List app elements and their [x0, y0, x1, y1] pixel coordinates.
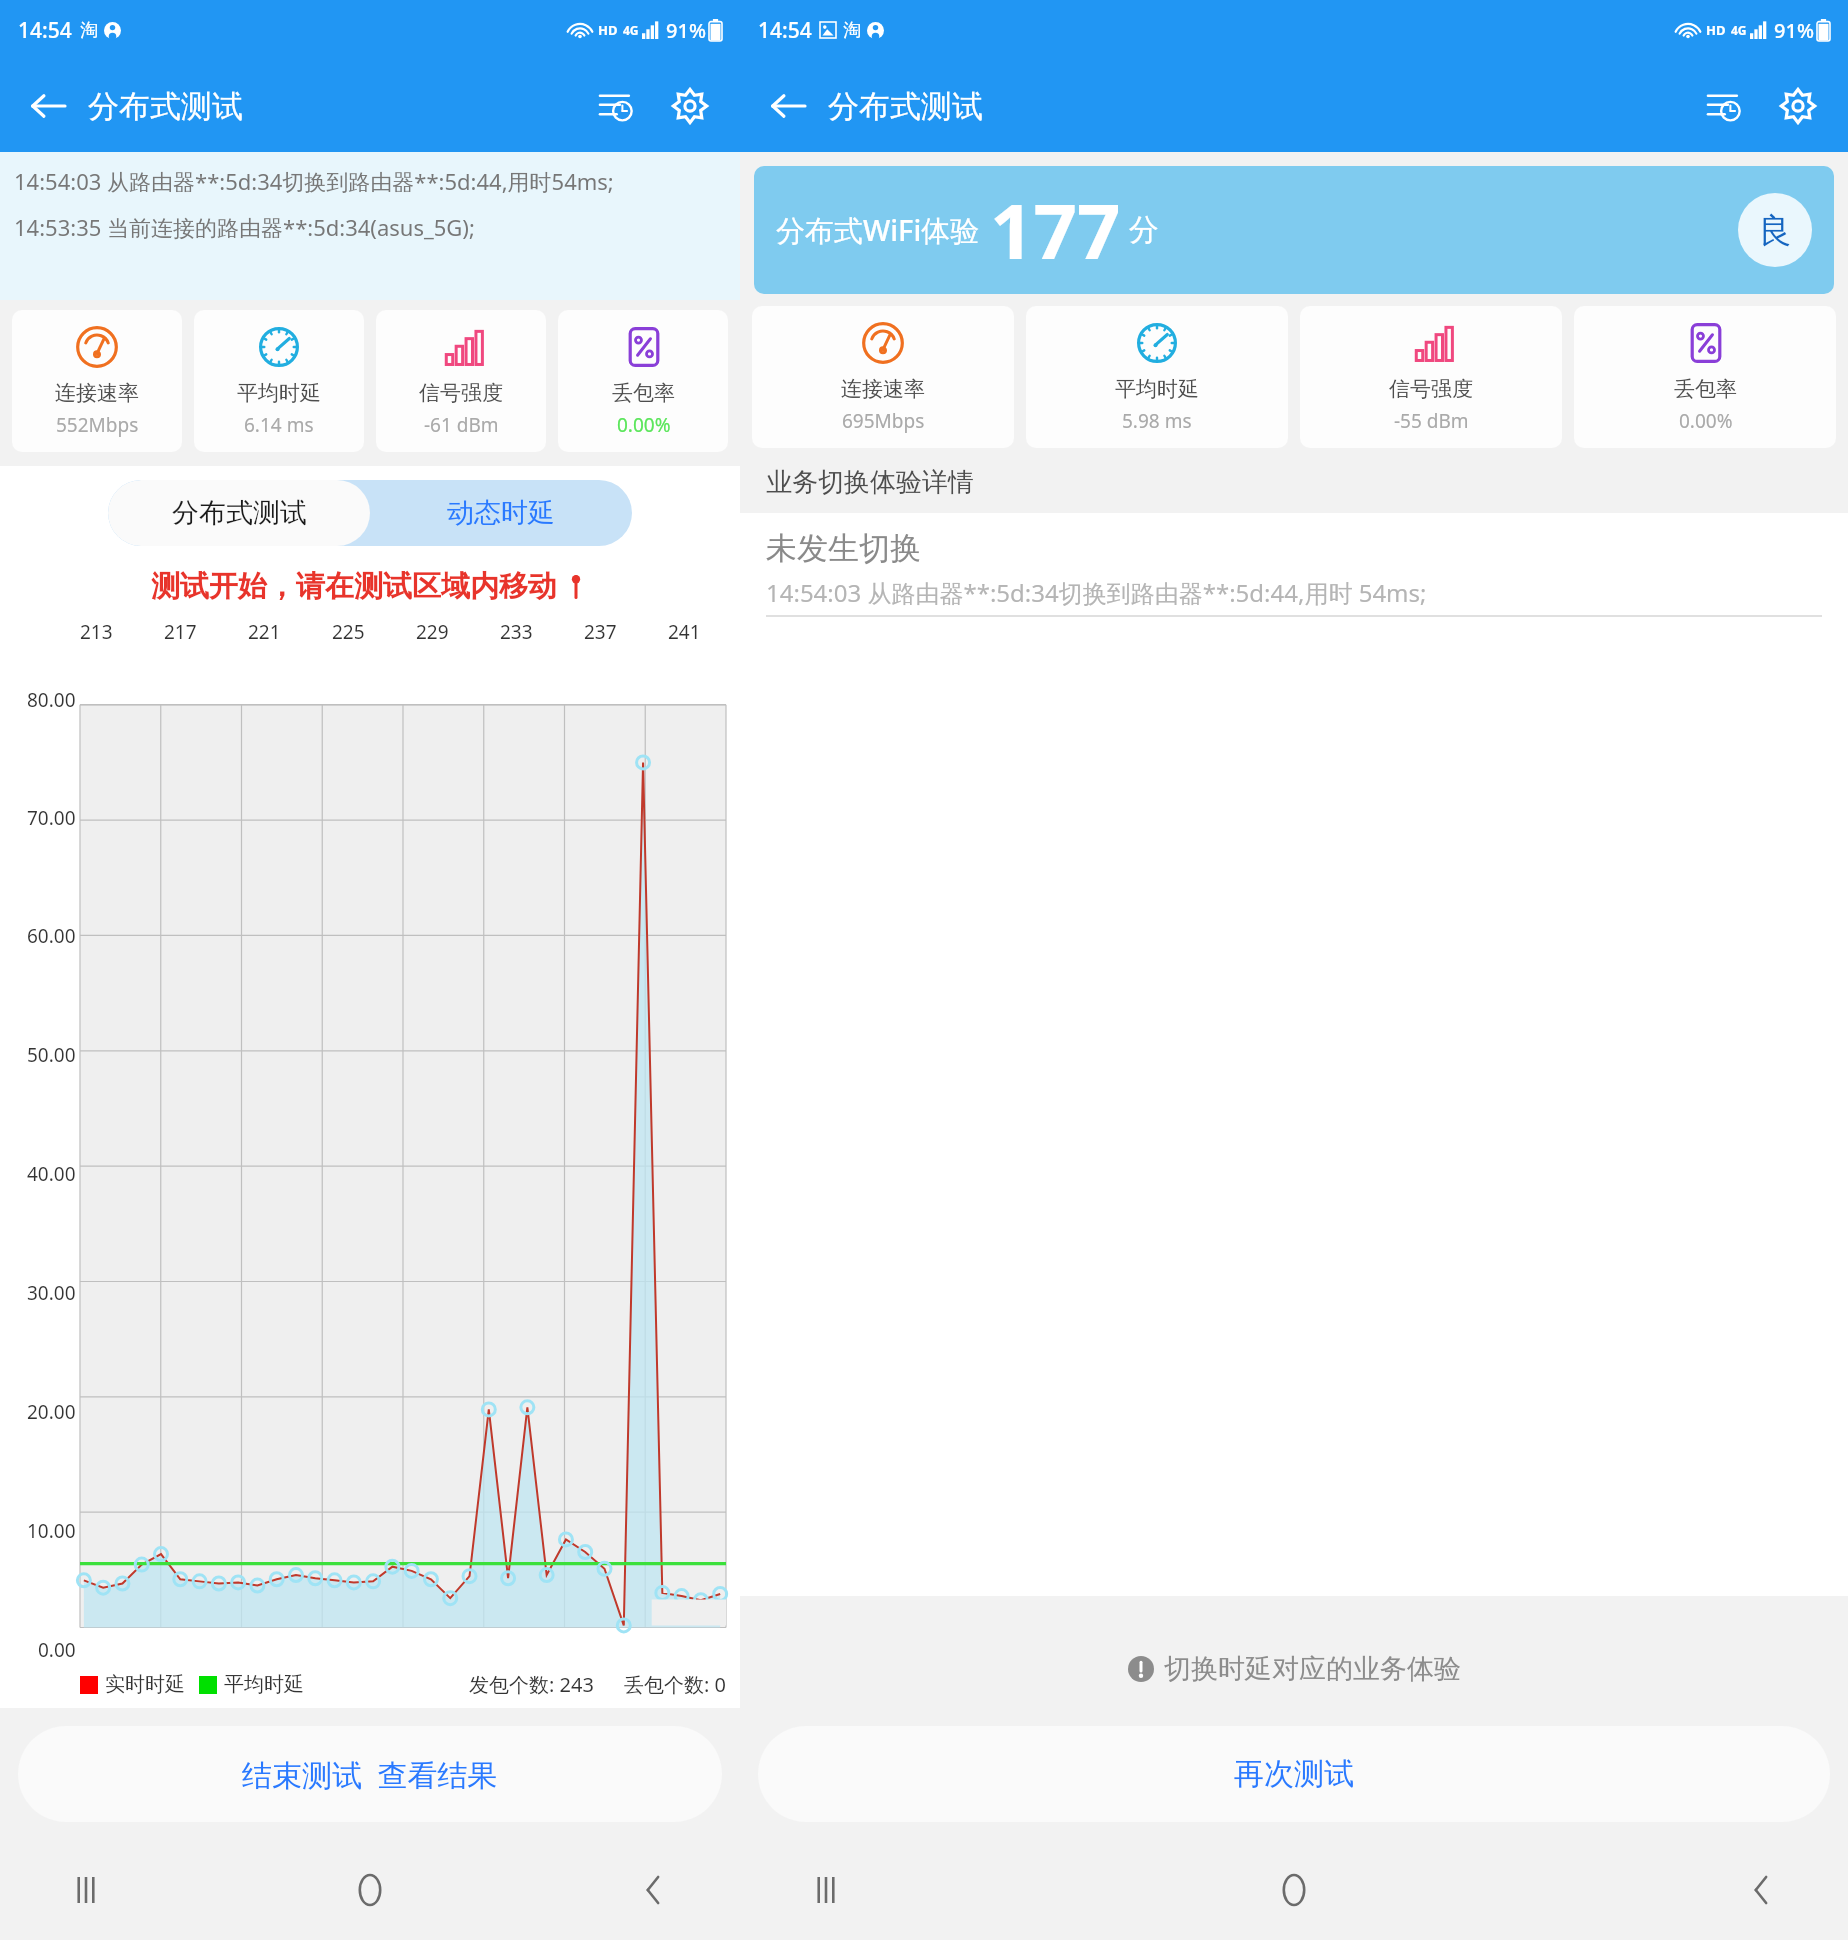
staticText: 动态时延	[447, 496, 555, 530]
staticText: 91%	[1774, 17, 1814, 44]
staticText: HD	[1706, 21, 1726, 39]
staticText: 业务切换体验详情	[766, 466, 974, 499]
staticText: 0.00%	[1679, 408, 1733, 434]
staticText: 发包个数: 243	[469, 1671, 594, 1698]
staticText: 233	[500, 619, 533, 645]
staticText: 0.00%	[617, 412, 671, 438]
button[interactable]: Back	[624, 1860, 684, 1920]
staticText: 连接速率	[841, 376, 925, 402]
button[interactable]: Recents	[56, 1860, 116, 1920]
staticText: 229	[416, 619, 449, 645]
button[interactable]: Home	[1264, 1860, 1324, 1920]
staticText: 6.14 ms	[244, 412, 314, 438]
staticText: 平均时延	[224, 1672, 304, 1697]
staticText: 14:54:03 从路由器**:5d:34切换到路由器**:5d:44,用时54…	[14, 166, 614, 196]
button[interactable]: 平均时延	[194, 310, 364, 452]
button[interactable]: Recents	[796, 1860, 856, 1920]
staticText: 平均时延	[1115, 376, 1199, 402]
staticText: 丢包率	[612, 380, 675, 406]
staticText: 213	[80, 619, 113, 645]
staticText: 14:54	[18, 16, 72, 45]
staticText: 60.00	[27, 923, 76, 949]
staticText: 30.00	[27, 1280, 76, 1306]
staticText: 分	[1129, 211, 1159, 249]
staticText: 分布式WiFi体验	[776, 210, 980, 250]
button[interactable]: 动态时延	[370, 480, 632, 546]
button[interactable]: Back	[1732, 1860, 1792, 1920]
staticText: 淘	[80, 19, 98, 42]
staticText: 225	[332, 619, 365, 645]
button[interactable]: 结束测试 查看结果	[18, 1726, 722, 1822]
staticText: -61 dBm	[424, 412, 499, 438]
staticText: 14:53:35 当前连接的路由器**:5d:34(asus_5G);	[14, 212, 475, 242]
button[interactable]: 信号强度	[1300, 306, 1562, 448]
staticText: 0.00	[38, 1637, 76, 1663]
staticText: 70.00	[27, 805, 76, 831]
staticText: 再次测试	[1234, 1755, 1354, 1793]
staticText: 信号强度	[1389, 376, 1473, 402]
button[interactable]: Settings	[1770, 78, 1826, 134]
staticText: 分布式测试	[828, 87, 983, 126]
staticText: 40.00	[27, 1161, 76, 1187]
staticText: 平均时延	[237, 380, 321, 406]
staticText: 14:54	[758, 16, 812, 45]
button[interactable]: Home	[340, 1860, 400, 1920]
button[interactable]: 连接速率	[12, 310, 182, 452]
staticText: 分布式测试	[172, 496, 307, 530]
button[interactable]: Settings	[662, 78, 718, 134]
staticText: 良	[1758, 209, 1792, 252]
staticText: 丢包率	[1674, 376, 1737, 402]
button[interactable]: 分布式测试	[108, 480, 370, 546]
staticText: 4G	[1731, 22, 1747, 38]
staticText: 测试开始，请在测试区域内移动	[151, 568, 557, 605]
button[interactable]: 信号强度	[376, 310, 546, 452]
staticText: 91%	[666, 17, 706, 44]
button[interactable]: 平均时延	[1026, 306, 1288, 448]
staticText: 221	[248, 619, 281, 645]
staticText: 14:54:03 从路由器**:5d:34切换到路由器**:5d:44,用时 5…	[766, 576, 1427, 609]
staticText: 80.00	[27, 687, 76, 713]
button[interactable]: 再次测试	[758, 1726, 1830, 1822]
staticText: 分布式测试	[88, 87, 243, 126]
button[interactable]: History	[588, 78, 644, 134]
staticText: 切换时延对应的业务体验	[1164, 1652, 1461, 1686]
staticText: 淘	[843, 19, 861, 42]
staticText: 20.00	[27, 1399, 76, 1425]
button[interactable]: 连接速率	[752, 306, 1014, 448]
button[interactable]: 丢包率	[1574, 306, 1836, 448]
staticText: 未发生切换	[766, 529, 921, 568]
staticText: 连接速率	[55, 380, 139, 406]
staticText: 实时时延	[105, 1672, 185, 1697]
staticText: HD	[598, 21, 618, 39]
staticText: -55 dBm	[1394, 408, 1469, 434]
staticText: 5.98 ms	[1122, 408, 1192, 434]
button[interactable]: History	[1696, 78, 1752, 134]
staticText: 241	[668, 619, 701, 645]
staticText: 50.00	[27, 1042, 76, 1068]
button[interactable]: Back	[22, 80, 74, 132]
staticText: 552Mbps	[56, 412, 139, 438]
staticText: 10.00	[27, 1518, 76, 1544]
staticText: 信号强度	[419, 380, 503, 406]
staticText: 217	[164, 619, 197, 645]
staticText: 丢包个数: 0	[624, 1671, 726, 1698]
button[interactable]: 丢包率	[558, 310, 728, 452]
staticText: 4G	[623, 22, 639, 38]
staticText: 177	[990, 178, 1121, 282]
staticText: 237	[584, 619, 617, 645]
staticText: 695Mbps	[842, 408, 925, 434]
button[interactable]: Back	[762, 80, 814, 132]
staticText: 结束测试 查看结果	[242, 1754, 498, 1795]
